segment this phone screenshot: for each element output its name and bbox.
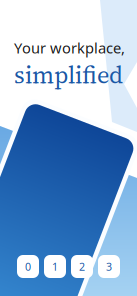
staticText: Your workplace, bbox=[14, 38, 125, 57]
staticText: 1 bbox=[52, 259, 58, 274]
button[interactable]: Device bbox=[17, 255, 39, 278]
staticText: 2 bbox=[79, 259, 85, 274]
button[interactable]: Device bbox=[44, 255, 66, 278]
staticText: 0 bbox=[25, 259, 31, 274]
button[interactable]: Device bbox=[98, 255, 120, 278]
staticText: simplified bbox=[14, 58, 123, 91]
staticText: 3 bbox=[106, 259, 112, 274]
button[interactable]: Device bbox=[71, 255, 93, 278]
